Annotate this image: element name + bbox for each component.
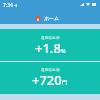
staticText: 運用収益額 xyxy=(41,68,60,72)
button[interactable]: 運用収益率 xyxy=(0,29,100,61)
staticText: 7:34 xyxy=(3,2,13,9)
other: Home xyxy=(35,15,41,21)
staticText: 運用収益率 xyxy=(41,36,60,40)
button[interactable]: 運用収益額 xyxy=(0,62,100,94)
staticText: +720 xyxy=(32,71,62,89)
staticText: % xyxy=(61,47,66,54)
staticText: ホーム xyxy=(44,15,60,21)
staticText: 円 xyxy=(62,79,68,86)
staticText: +1.8 xyxy=(35,39,61,57)
button[interactable]: Home xyxy=(35,15,60,21)
